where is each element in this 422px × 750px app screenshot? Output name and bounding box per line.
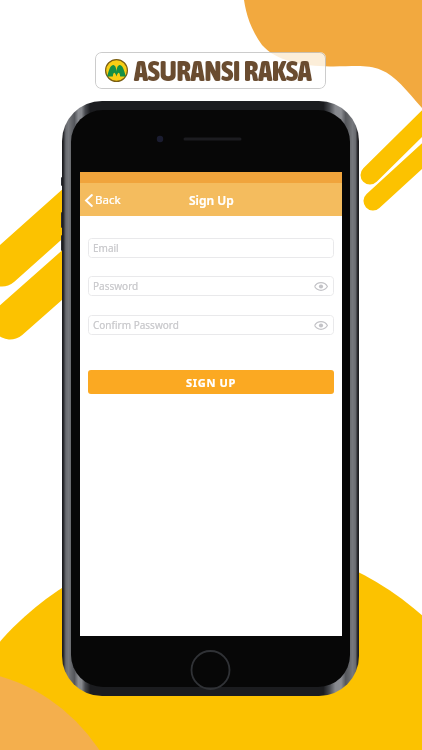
staticText: ASURANSI RAKSA (134, 54, 312, 87)
other: Show password (314, 283, 328, 290)
staticText: Confirm Password (93, 318, 179, 332)
staticText: Sign Up (189, 192, 234, 208)
button[interactable]: Password (88, 276, 334, 296)
other: Show password (314, 322, 328, 329)
button[interactable]: Confirm Password (88, 315, 334, 335)
button[interactable]: SIGN UP (88, 370, 334, 394)
button[interactable]: Email (88, 238, 334, 258)
button[interactable]: ASURANSI RAKSA (95, 52, 326, 89)
staticText: Password (93, 279, 139, 293)
staticText: Back (95, 192, 121, 208)
staticText: Email (93, 241, 119, 255)
staticText: SIGN UP (186, 375, 237, 390)
button[interactable]: Back (85, 192, 121, 208)
